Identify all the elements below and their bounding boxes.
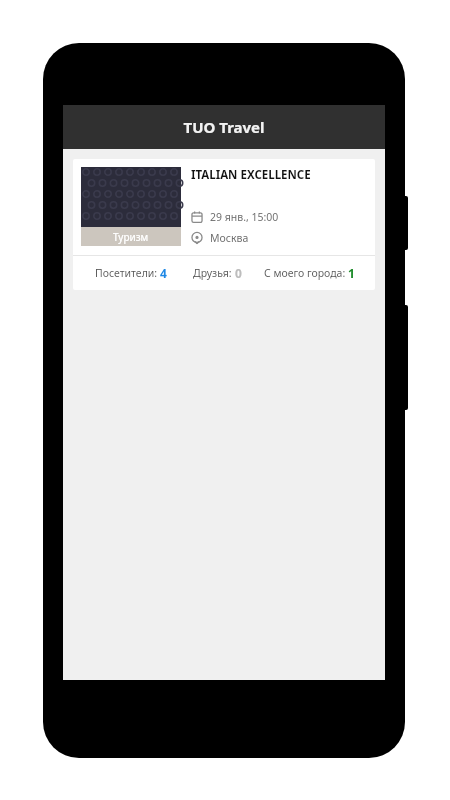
staticText: Москва bbox=[210, 231, 249, 245]
button[interactable]: Туризм bbox=[73, 159, 375, 290]
staticText: Друзья: bbox=[193, 266, 235, 280]
staticText: 4 bbox=[160, 265, 167, 281]
staticText: 29 янв., 15:00 bbox=[210, 210, 279, 224]
staticText: Посетители: bbox=[95, 266, 160, 280]
staticText: ITALIAN EXCELLENCE bbox=[191, 167, 311, 183]
staticText: Туризм bbox=[113, 230, 149, 244]
staticText: 0 bbox=[235, 265, 242, 281]
staticText: TUO Travel bbox=[183, 117, 265, 137]
staticText: 1 bbox=[348, 265, 355, 281]
staticText: С моего города: bbox=[264, 266, 348, 280]
